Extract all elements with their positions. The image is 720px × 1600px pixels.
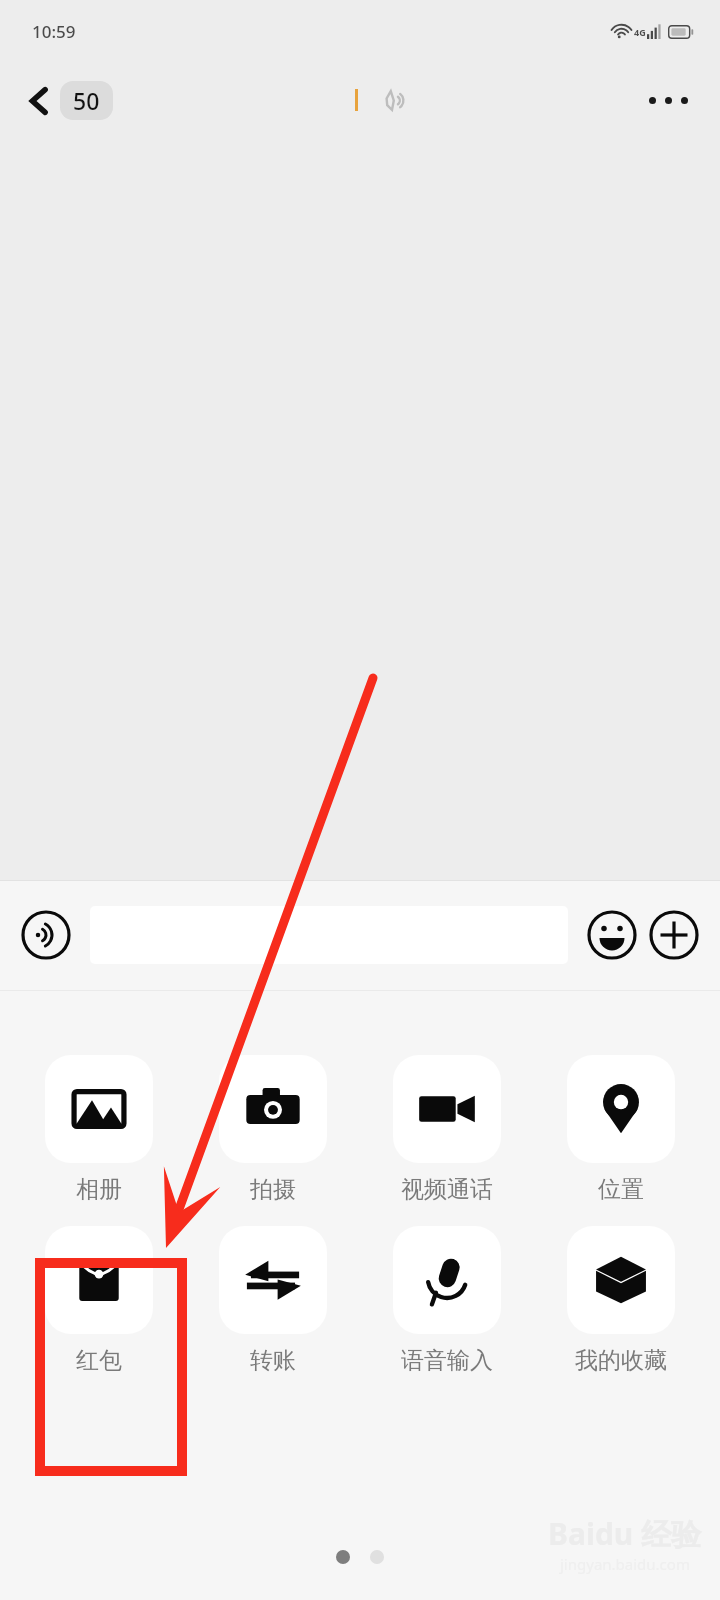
button[interactable]: 位置 <box>546 1055 696 1204</box>
button[interactable] <box>90 906 568 964</box>
button[interactable]: 转账 <box>198 1226 348 1375</box>
staticText: 4G <box>634 26 646 38</box>
button[interactable]: Back <box>22 75 119 126</box>
staticText: 位置 <box>598 1175 644 1204</box>
staticText: Baidu 经验 <box>548 1513 702 1554</box>
staticText: 相册 <box>76 1175 122 1204</box>
button[interactable]: 相册 <box>24 1055 174 1204</box>
button[interactable]: More functions <box>646 907 702 963</box>
staticText: 10:59 <box>32 20 76 43</box>
staticText: 视频通话 <box>401 1175 493 1204</box>
button[interactable]: 红包 <box>24 1226 174 1375</box>
button[interactable]: More options <box>641 89 696 112</box>
button[interactable]: Voice input <box>18 907 74 963</box>
button[interactable]: 拍摄 <box>198 1055 348 1204</box>
other: Speaker mode <box>380 87 410 113</box>
staticText: 50 <box>73 85 100 116</box>
staticText: 红包 <box>76 1346 122 1375</box>
staticText: 我的收藏 <box>575 1346 667 1375</box>
staticText: 拍摄 <box>250 1175 296 1204</box>
button[interactable]: 我的收藏 <box>546 1226 696 1375</box>
staticText: 转账 <box>250 1346 296 1375</box>
button[interactable]: 语音输入 <box>372 1226 522 1375</box>
button[interactable]: 视频通话 <box>372 1055 522 1204</box>
button[interactable]: Emoji <box>584 907 640 963</box>
other: Back <box>28 86 50 116</box>
staticText: 语音输入 <box>401 1346 493 1375</box>
